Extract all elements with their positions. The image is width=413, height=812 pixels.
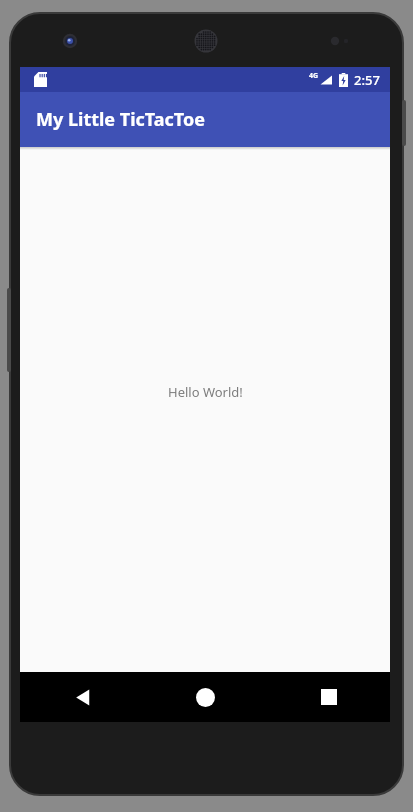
button[interactable]: Home <box>144 672 267 722</box>
button[interactable]: Back <box>20 672 144 722</box>
staticText: 4G <box>309 71 319 81</box>
staticText: Hello World! <box>168 383 243 401</box>
staticText: 2:57 <box>354 71 380 89</box>
button[interactable]: Recent apps <box>267 672 390 722</box>
staticText: My Little TicTacToe <box>36 107 205 132</box>
